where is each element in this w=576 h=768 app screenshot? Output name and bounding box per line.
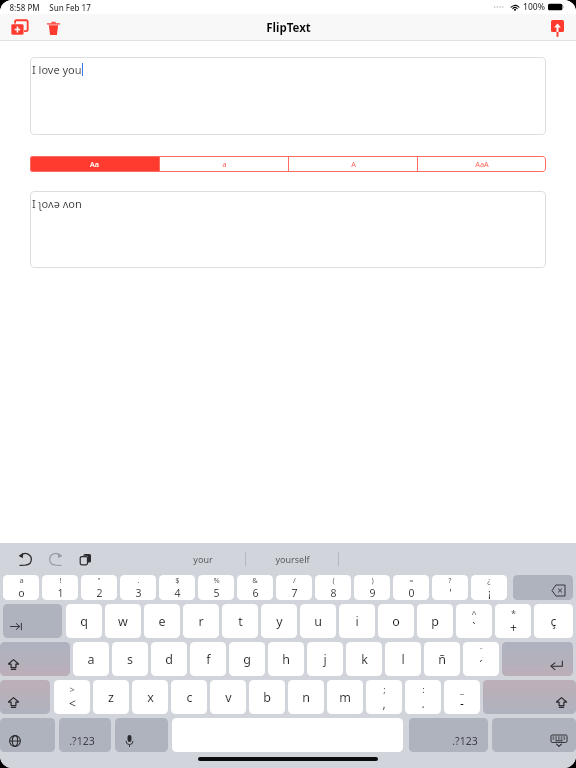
button[interactable]: a [160,156,288,172]
button[interactable]: ¿ [471,575,507,600]
staticText: a [87,651,95,668]
staticText: < [69,695,76,711]
button[interactable]: ñ [424,642,460,676]
button[interactable]: & [237,575,273,600]
staticText: ! [59,575,62,585]
staticText: d [165,651,173,668]
staticText: o [392,613,400,630]
button[interactable]: * [495,604,531,638]
staticText: 100% [523,1,545,13]
button[interactable]: b [249,680,285,714]
button[interactable]: Aa [30,156,159,172]
button[interactable]: z [93,680,129,714]
staticText: ^ [471,607,477,619]
button[interactable]: ) [354,575,390,600]
button[interactable]: s [112,642,148,676]
button[interactable]: > [54,680,90,714]
button[interactable]: c [171,680,207,714]
staticText: FlipText [266,20,311,36]
button[interactable]: AaA [418,156,546,172]
button[interactable]: Delete [40,14,67,41]
staticText: I ʅoʌǝ ʌon [32,196,82,211]
button[interactable]: v [210,680,246,714]
button[interactable]: tab [3,604,62,638]
button[interactable]: k [346,642,382,676]
button[interactable]: .?123 [59,718,111,752]
staticText: AaA [475,159,489,169]
button[interactable]: u [300,604,336,638]
button[interactable]: A [289,156,417,172]
button[interactable]: y [261,604,297,638]
button[interactable]: p [417,604,453,638]
button[interactable]: globe [0,718,55,752]
button[interactable]: : [405,680,441,714]
staticText: 0 [408,586,415,600]
button[interactable]: ? [432,575,468,600]
button[interactable]: . [120,575,156,600]
button[interactable]: j [307,642,343,676]
button[interactable]: shift_r [483,680,576,714]
button[interactable]: ! [42,575,78,600]
button[interactable]: I love you [30,57,546,135]
staticText: . [421,695,425,711]
button[interactable]: ; [366,680,402,714]
staticText: I love you [32,62,82,77]
button[interactable]: m [327,680,363,714]
button[interactable]: .?123 [409,718,488,752]
button[interactable]: % [198,575,234,600]
button[interactable]: Duplicate [6,14,33,41]
button[interactable]: t [222,604,258,638]
button[interactable]: i [339,604,375,638]
button[interactable]: " [81,575,117,600]
staticText: w [118,613,128,630]
staticText: , [382,695,386,711]
button[interactable]: ¨ [463,642,499,676]
staticText: r [198,613,204,630]
staticText: 8 [330,586,337,600]
button[interactable]: h [268,642,304,676]
button[interactable]: g [229,642,265,676]
staticText: 2 [96,586,103,600]
button[interactable]: / [276,575,312,600]
button[interactable]: w [105,604,141,638]
staticText: f [206,651,211,668]
button[interactable]: Redo [44,548,66,570]
button[interactable]: e [144,604,180,638]
button[interactable]: I ʅoʌǝ ʌon [30,191,546,268]
button[interactable]: o [378,604,414,638]
staticText: 3 [135,586,142,600]
button[interactable]: x [132,680,168,714]
button[interactable]: d [151,642,187,676]
button[interactable]: f [190,642,226,676]
button[interactable]: Share [545,14,569,41]
button[interactable]: q [66,604,102,638]
button[interactable]: yourself [246,543,338,575]
button[interactable]: return [502,642,573,676]
button[interactable]: a [73,642,109,676]
button[interactable]: backspace [513,575,573,600]
button[interactable]: ( [315,575,351,600]
button[interactable]: l [385,642,421,676]
button[interactable]: n [288,680,324,714]
button[interactable]: $ [159,575,195,600]
button[interactable]: Paste [74,548,96,570]
button[interactable]: = [393,575,429,600]
button[interactable]: r [183,604,219,638]
button[interactable]: ^ [456,604,492,638]
button[interactable]: Undo [14,548,36,570]
button[interactable]: shift_l [0,642,70,676]
staticText: 5 [213,586,220,600]
staticText: % [213,575,220,585]
staticText: c [186,689,193,706]
button[interactable]: a [3,575,39,600]
staticText: x [147,689,154,706]
button[interactable]: kbdown [492,718,576,752]
button[interactable]: mic [115,718,168,752]
button[interactable]: _ [444,680,480,714]
button[interactable]: your [160,543,245,575]
button[interactable]: ç [534,604,573,638]
staticText: ¨ [478,645,484,657]
staticText: ( [332,575,335,585]
button[interactable]: shift_l [0,680,50,714]
